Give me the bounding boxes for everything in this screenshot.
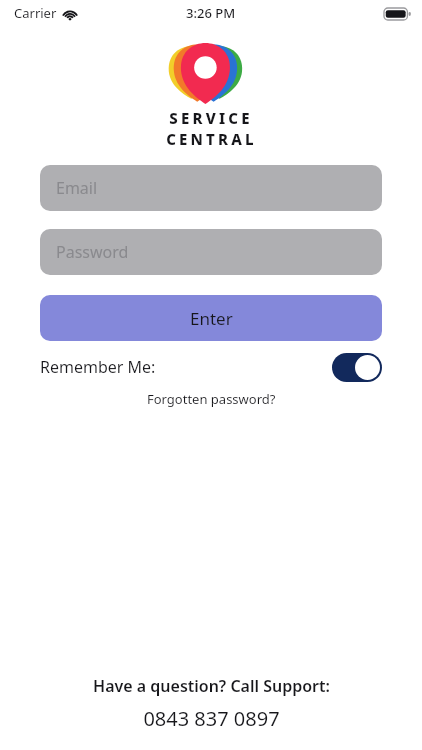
staticText: Password	[56, 241, 129, 263]
button[interactable]: 0843 837 0897	[133, 703, 290, 734]
staticText: 3:26 PM	[186, 4, 236, 22]
button[interactable]: Enter	[40, 295, 382, 341]
staticText: Forgotten password?	[147, 390, 276, 408]
button[interactable]: Email	[40, 165, 382, 211]
button[interactable]: Password	[40, 229, 382, 275]
button[interactable]: Remember Me toggle, on	[332, 353, 382, 382]
staticText: Email	[56, 177, 98, 199]
staticText: 0843 837 0897	[143, 705, 280, 732]
staticText: Have a question? Call Support:	[93, 675, 330, 697]
button[interactable]: Forgotten password?	[139, 387, 284, 411]
staticText: SERVICE	[169, 108, 253, 128]
staticText: Enter	[190, 307, 233, 330]
staticText: Remember Me:	[40, 356, 156, 378]
staticText: CENTRAL	[166, 129, 257, 149]
staticText: Carrier	[14, 4, 57, 22]
